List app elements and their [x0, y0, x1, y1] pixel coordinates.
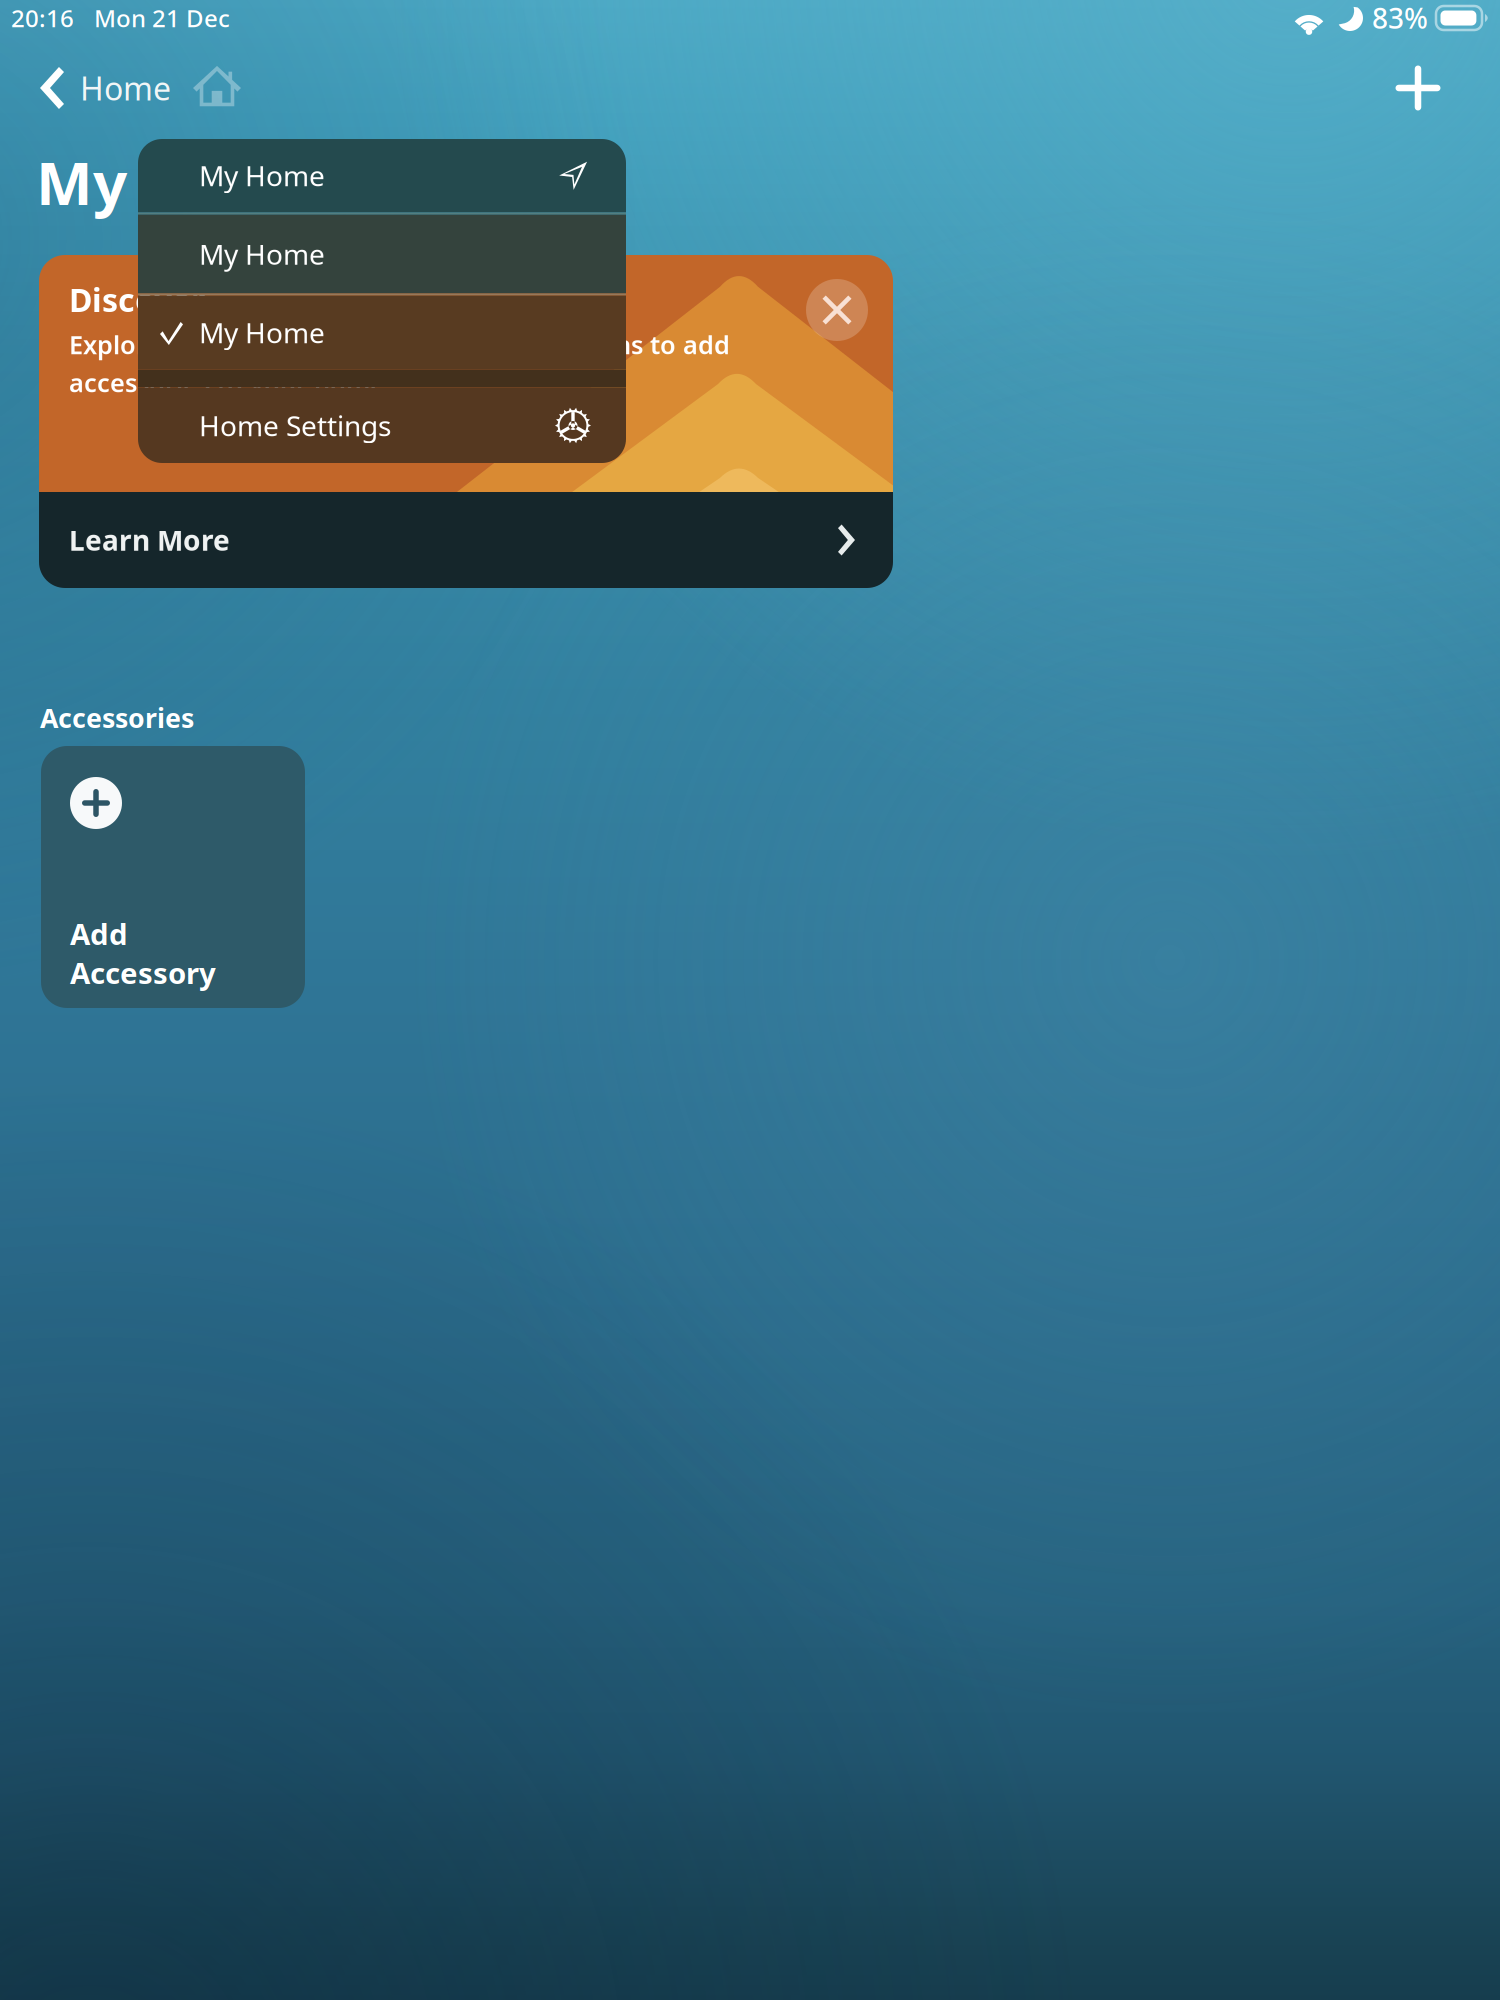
- staticText: Accessory: [70, 953, 216, 992]
- staticText: Accessories: [40, 700, 194, 735]
- staticText: 20:16: [11, 2, 74, 34]
- button[interactable]: Learn More: [39, 492, 893, 588]
- staticText: My Home: [199, 314, 325, 351]
- staticText: Add: [70, 914, 128, 953]
- staticText: Home Settings: [199, 407, 391, 444]
- staticText: Discover: [69, 278, 205, 321]
- staticText: accessories to your home.: [69, 366, 392, 399]
- button[interactable]: My Home: [138, 295, 626, 369]
- button[interactable]: Add: [1376, 50, 1460, 126]
- staticText: Home: [80, 67, 171, 109]
- staticText: My Home: [199, 235, 325, 273]
- button[interactable]: Home Settings: [138, 387, 626, 463]
- button[interactable]: Home: [0, 50, 259, 126]
- staticText: My Home: [36, 142, 322, 222]
- staticText: Learn More: [69, 521, 230, 559]
- button[interactable]: My Home: [138, 214, 626, 293]
- button[interactable]: Add: [41, 746, 305, 1008]
- staticText: My Home: [199, 157, 325, 194]
- staticText: Mon 21 Dec: [94, 2, 230, 34]
- button[interactable]: My Home: [138, 138, 626, 212]
- button[interactable]: Dismiss: [797, 270, 877, 350]
- staticText: Explore new ideas, tips, and recommendat…: [69, 328, 730, 361]
- staticText: 83%: [1372, 0, 1428, 37]
